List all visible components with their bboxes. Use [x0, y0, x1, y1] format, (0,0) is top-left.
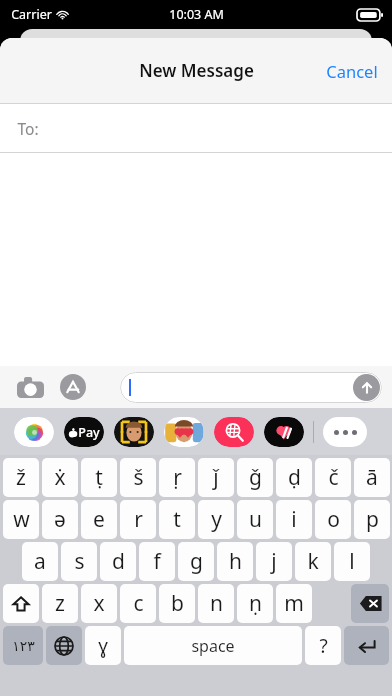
staticText: ž	[16, 463, 26, 492]
staticText: s	[74, 547, 85, 576]
staticText: z	[55, 589, 65, 618]
button[interactable]: k	[295, 542, 331, 581]
button[interactable]: Apple Pay	[64, 417, 104, 447]
staticText: r	[134, 505, 143, 534]
button[interactable]: More apps	[323, 417, 367, 447]
staticText: č	[328, 463, 339, 492]
staticText: t	[173, 505, 181, 534]
staticText: j	[271, 547, 277, 576]
button[interactable]: ə	[42, 500, 78, 539]
button[interactable]: j	[256, 542, 292, 581]
button[interactable]: š	[120, 458, 156, 497]
staticText: b	[171, 589, 184, 618]
button[interactable]: To:	[0, 104, 392, 153]
button[interactable]: ṭ	[81, 458, 117, 497]
button[interactable]: Return	[344, 626, 389, 665]
button[interactable]: ž	[3, 458, 39, 497]
button[interactable]: Cancel	[312, 48, 392, 94]
button[interactable]: ɣ	[85, 626, 121, 665]
button[interactable]: r	[120, 500, 156, 539]
staticText: ṭ	[95, 463, 103, 492]
button[interactable]: e	[81, 500, 117, 539]
staticText: ɣ	[98, 633, 108, 659]
staticText: m	[284, 589, 304, 618]
button[interactable]: w	[3, 500, 39, 539]
button[interactable]: ṇ	[237, 584, 273, 623]
staticText: n	[210, 589, 223, 618]
staticText: Carrier	[11, 6, 52, 23]
button[interactable]: Next keyboard	[46, 626, 82, 665]
button[interactable]: space	[124, 626, 302, 665]
button[interactable]: d	[100, 542, 136, 581]
staticText: New Message	[139, 59, 254, 82]
staticText: ā	[366, 463, 378, 492]
button[interactable]: Memoji	[114, 417, 154, 447]
button[interactable]: ǰ	[198, 458, 234, 497]
button[interactable]: z	[42, 584, 78, 623]
staticText: f	[153, 547, 161, 576]
button[interactable]: i	[276, 500, 312, 539]
button[interactable]: Camera	[12, 369, 48, 405]
button[interactable]: Send	[353, 374, 380, 401]
button[interactable]: ǧ	[237, 458, 273, 497]
staticText: u	[249, 505, 262, 534]
button[interactable]: ā	[354, 458, 390, 497]
staticText: Cancel	[326, 60, 378, 82]
button[interactable]: o	[315, 500, 351, 539]
button[interactable]: p	[354, 500, 390, 539]
staticText: a	[34, 547, 46, 576]
staticText: To:	[17, 118, 39, 139]
staticText: space	[191, 635, 235, 657]
staticText: ṇ	[249, 589, 262, 618]
staticText: d	[112, 547, 125, 576]
button[interactable]: Backspace	[351, 584, 389, 623]
staticText: x	[93, 589, 105, 618]
button[interactable]: c	[120, 584, 156, 623]
staticText: š	[133, 463, 144, 492]
button[interactable]: t	[159, 500, 195, 539]
staticText: ḍ	[288, 463, 301, 492]
staticText: c	[133, 589, 144, 618]
button[interactable]: n	[198, 584, 234, 623]
staticText: g	[190, 547, 203, 576]
button[interactable]: l	[334, 542, 370, 581]
staticText: y	[211, 505, 222, 534]
button[interactable]: Shift	[3, 584, 39, 623]
button[interactable]: y	[198, 500, 234, 539]
staticText: ١٢٣	[12, 638, 35, 654]
button[interactable]: x	[81, 584, 117, 623]
staticText: e	[93, 505, 105, 534]
button[interactable]: Memoji Stickers	[164, 417, 204, 447]
button[interactable]: f	[139, 542, 175, 581]
button[interactable]: b	[159, 584, 195, 623]
staticText: Pay	[78, 424, 100, 441]
staticText: l	[349, 547, 355, 576]
button[interactable]: Send	[120, 372, 382, 403]
button[interactable]: Digital Touch	[264, 417, 304, 447]
button[interactable]: g	[178, 542, 214, 581]
staticText: ṛ	[173, 463, 182, 492]
button[interactable]: č	[315, 458, 351, 497]
staticText: 10:03 AM	[169, 6, 224, 23]
button[interactable]: ṛ	[159, 458, 195, 497]
button[interactable]: m	[276, 584, 312, 623]
button[interactable]: ١٢٣	[3, 626, 43, 665]
staticText: ǰ	[213, 463, 219, 492]
staticText: o	[327, 505, 340, 534]
button[interactable]: h	[217, 542, 253, 581]
button[interactable]: ḍ	[276, 458, 312, 497]
staticText: h	[229, 547, 242, 576]
button[interactable]: u	[237, 500, 273, 539]
staticText: ə	[54, 505, 66, 534]
button[interactable]: Images	[214, 417, 254, 447]
button[interactable]: ?	[305, 626, 341, 665]
button[interactable]: App Store	[56, 370, 90, 404]
staticText: ẋ	[54, 463, 66, 492]
button[interactable]: s	[61, 542, 97, 581]
button[interactable]: Photos	[14, 417, 54, 447]
staticText: w	[13, 505, 30, 534]
button[interactable]: ẋ	[42, 458, 78, 497]
staticText: p	[366, 505, 379, 534]
staticText: k	[307, 547, 319, 576]
button[interactable]: a	[22, 542, 58, 581]
